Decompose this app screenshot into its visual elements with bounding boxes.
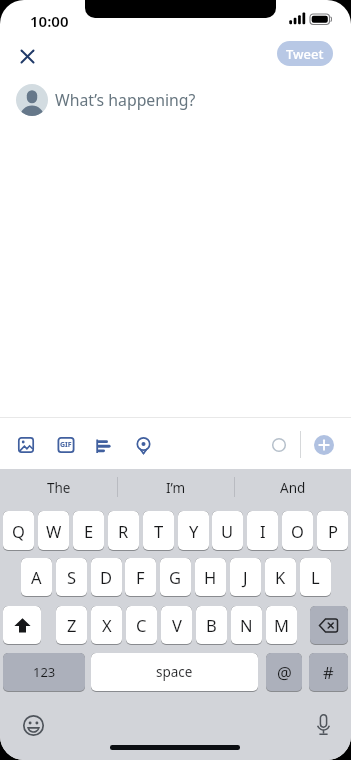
staticText: C	[136, 614, 147, 636]
button[interactable]: And	[234, 469, 351, 506]
staticText: B	[206, 614, 217, 636]
button[interactable]: The	[0, 469, 117, 506]
staticText: A	[31, 566, 42, 588]
staticText: 10:00	[30, 11, 69, 29]
button[interactable]: R	[108, 511, 139, 550]
staticText: T	[154, 520, 164, 542]
button[interactable]: L	[300, 558, 331, 596]
staticText: H	[204, 566, 217, 588]
staticText: Tweet	[286, 45, 324, 63]
button[interactable]: T	[143, 511, 174, 550]
button[interactable]: #	[309, 653, 348, 691]
staticText: @	[277, 661, 292, 683]
staticText: L	[311, 566, 320, 588]
staticText: X	[102, 614, 112, 636]
staticText: K	[275, 566, 286, 588]
staticText: S	[67, 566, 77, 588]
staticText: Y	[189, 520, 199, 542]
staticText: V	[172, 614, 182, 636]
button[interactable]	[3, 606, 41, 644]
staticText: Z	[67, 614, 77, 636]
staticText: 123	[33, 663, 56, 681]
staticText: I	[260, 520, 266, 542]
button[interactable]	[12, 431, 40, 459]
button[interactable]: Q	[3, 511, 34, 550]
button[interactable]: 123	[3, 653, 85, 691]
button[interactable]: A	[21, 558, 52, 596]
button[interactable]: space	[91, 653, 258, 691]
button[interactable]: @	[266, 653, 302, 691]
button[interactable]: N	[231, 606, 262, 644]
staticText: The	[47, 479, 71, 497]
staticText: M	[274, 614, 289, 636]
button[interactable]: GIF	[52, 431, 80, 459]
staticText: O	[291, 520, 304, 542]
button[interactable]: B	[196, 606, 227, 644]
button[interactable]: F	[125, 558, 156, 596]
staticText: space	[156, 663, 193, 681]
staticText: #	[323, 661, 334, 683]
staticText: D	[100, 566, 113, 588]
staticText: P	[328, 520, 338, 542]
button[interactable]	[13, 705, 53, 745]
button[interactable]: V	[161, 606, 192, 644]
staticText: W	[46, 520, 62, 542]
button[interactable]: G	[160, 558, 191, 596]
button[interactable]: D	[91, 558, 122, 596]
button[interactable]: P	[317, 511, 348, 550]
button[interactable]: O	[282, 511, 313, 550]
button[interactable]: K	[265, 558, 296, 596]
button[interactable]	[13, 42, 41, 70]
staticText: Q	[12, 520, 25, 542]
staticText: And	[280, 479, 306, 497]
staticText: R	[118, 520, 129, 542]
button[interactable]	[303, 705, 343, 745]
button[interactable]: Y	[178, 511, 209, 550]
button[interactable]: I’m	[117, 469, 234, 506]
staticText: GIF	[60, 440, 72, 450]
button[interactable]: X	[91, 606, 122, 644]
button[interactable]: W	[38, 511, 69, 550]
button[interactable]: Tweet	[277, 41, 333, 66]
button[interactable]: U	[212, 511, 243, 550]
staticText: F	[136, 566, 145, 588]
staticText: G	[169, 566, 182, 588]
button[interactable]: S	[56, 558, 87, 596]
button[interactable]	[314, 435, 334, 455]
button[interactable]	[129, 432, 157, 460]
staticText: J	[243, 566, 248, 588]
button[interactable]: J	[230, 558, 261, 596]
button[interactable]: E	[73, 511, 104, 550]
button[interactable]	[90, 432, 118, 460]
button[interactable]	[310, 606, 348, 644]
staticText: E	[84, 520, 94, 542]
staticText: I’m	[166, 479, 186, 497]
button[interactable]: H	[195, 558, 226, 596]
staticText: What’s happening?	[55, 89, 196, 111]
button[interactable]: M	[266, 606, 297, 644]
staticText: U	[221, 520, 234, 542]
staticText: N	[240, 614, 253, 636]
button[interactable]: I	[247, 511, 278, 550]
button[interactable]: Z	[56, 606, 87, 644]
button[interactable]: C	[126, 606, 157, 644]
